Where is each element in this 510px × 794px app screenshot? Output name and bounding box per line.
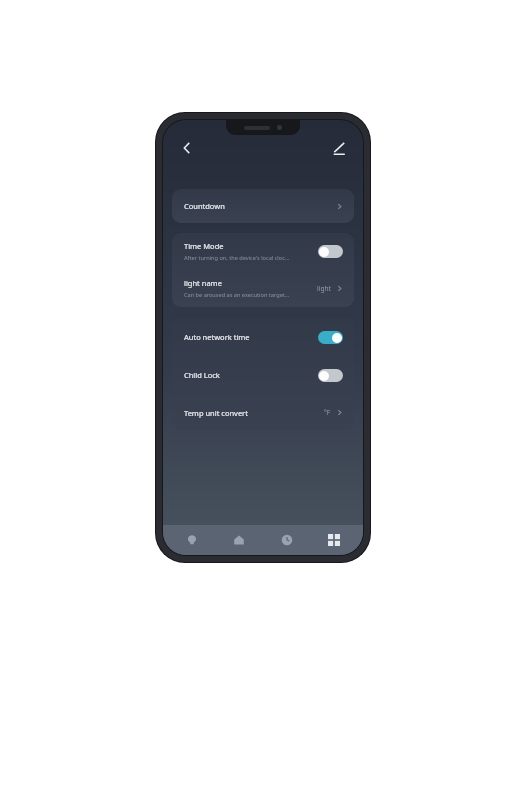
staticText: light (317, 284, 331, 293)
button[interactable]: Child Lock (172, 356, 354, 394)
button[interactable]: Countdown (172, 189, 354, 223)
staticText: Temp unit convert (184, 408, 248, 418)
button[interactable]: Auto network time (172, 318, 354, 356)
button[interactable]: Temp unit convert (172, 394, 354, 431)
staticText: After turning on, the device's local clo… (184, 254, 290, 262)
button[interactable]: Off (318, 245, 343, 258)
button[interactable]: Time Mode (172, 233, 354, 270)
button[interactable]: Back (171, 132, 203, 164)
staticText: Child Lock (184, 370, 220, 380)
staticText: Auto network time (184, 332, 250, 342)
staticText: °F (324, 408, 331, 417)
staticText: Can be aroused as an execution target… (184, 291, 290, 299)
button[interactable]: Apps (316, 525, 352, 555)
button[interactable]: Schedule (269, 525, 305, 555)
button[interactable]: Off (318, 369, 343, 382)
button[interactable]: light name (172, 270, 354, 307)
button[interactable]: Home (221, 525, 257, 555)
button[interactable]: On (318, 331, 343, 344)
staticText: Countdown (184, 201, 225, 211)
button[interactable]: Devices (174, 525, 210, 555)
staticText: Time Mode (184, 241, 224, 251)
staticText: light name (184, 278, 222, 288)
button[interactable]: Edit (322, 132, 354, 164)
